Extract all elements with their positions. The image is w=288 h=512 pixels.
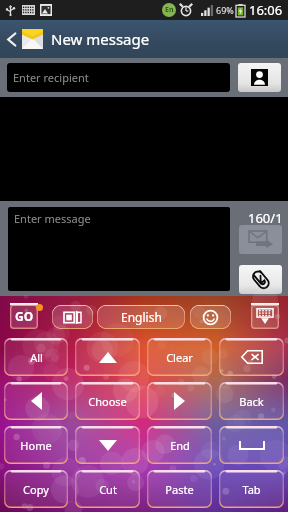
staticText: Tab bbox=[242, 482, 261, 497]
button[interactable]: GO bbox=[10, 303, 38, 329]
button[interactable]: Space bbox=[219, 426, 284, 464]
button[interactable]: Clear bbox=[147, 338, 212, 376]
button[interactable]: Attach bbox=[239, 265, 282, 294]
staticText: 16:06 bbox=[249, 1, 283, 19]
staticText: End bbox=[170, 438, 190, 453]
button[interactable]: Choose bbox=[75, 382, 140, 420]
button[interactable]: Back bbox=[219, 382, 284, 420]
staticText: All bbox=[30, 350, 43, 365]
button[interactable]: Send bbox=[239, 225, 282, 254]
staticText: Back bbox=[239, 394, 264, 409]
button[interactable]: Back bbox=[0, 20, 22, 58]
button[interactable]: Cut bbox=[75, 470, 140, 508]
staticText: Cut bbox=[99, 482, 117, 497]
staticText: Home bbox=[20, 438, 52, 453]
staticText: 69% bbox=[216, 4, 234, 16]
button[interactable]: Enter message bbox=[8, 207, 230, 291]
staticText: English bbox=[121, 309, 162, 325]
button[interactable]: Right bbox=[147, 382, 212, 420]
staticText: Copy bbox=[23, 482, 49, 497]
staticText: New message bbox=[51, 29, 150, 49]
button[interactable]: Hide keyboard bbox=[251, 303, 279, 329]
button[interactable]: Paste bbox=[147, 470, 212, 508]
other: Right bbox=[174, 392, 185, 410]
button[interactable]: Emoji bbox=[190, 305, 231, 329]
button[interactable]: All bbox=[4, 338, 68, 376]
button[interactable]: English bbox=[97, 305, 185, 329]
other: Down bbox=[99, 440, 117, 451]
button[interactable]: Keyboard layout bbox=[52, 305, 93, 329]
button[interactable]: Up bbox=[75, 338, 140, 376]
other: Space bbox=[239, 441, 265, 450]
staticText: Clear bbox=[166, 350, 193, 365]
button[interactable]: End bbox=[147, 426, 212, 464]
staticText: Enter recipient bbox=[13, 70, 89, 85]
other: Up bbox=[99, 352, 117, 363]
button[interactable]: Copy bbox=[4, 470, 68, 508]
staticText: Enter message bbox=[14, 211, 91, 226]
staticText: Choose bbox=[88, 394, 127, 409]
button[interactable]: Down bbox=[75, 426, 140, 464]
button[interactable]: Backspace bbox=[219, 338, 284, 376]
button[interactable]: Tab bbox=[219, 470, 284, 508]
button[interactable]: Left bbox=[4, 382, 68, 420]
staticText: 160/1 bbox=[248, 209, 283, 227]
button[interactable]: Choose contacts bbox=[238, 63, 281, 92]
other: Backspace bbox=[241, 350, 263, 364]
staticText: GO bbox=[15, 308, 34, 324]
button[interactable]: Enter recipient bbox=[7, 63, 230, 92]
staticText: Paste bbox=[165, 482, 194, 497]
other: Left bbox=[31, 392, 42, 410]
button[interactable]: Home bbox=[4, 426, 68, 464]
staticText: En bbox=[165, 5, 174, 15]
